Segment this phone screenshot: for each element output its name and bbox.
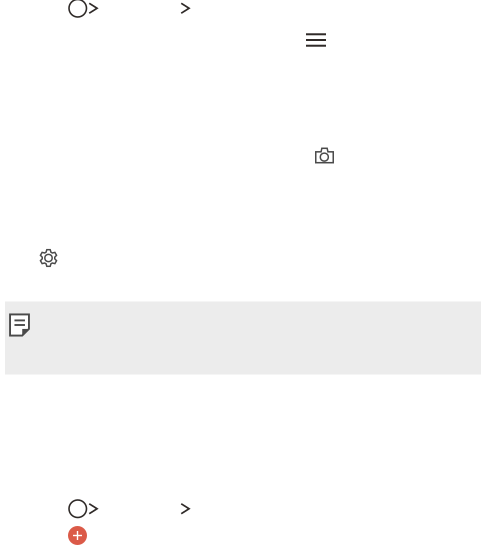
button[interactable]: More <box>180 3 189 14</box>
button[interactable]: New <box>68 526 87 545</box>
button[interactable]: Settings <box>40 249 57 266</box>
button[interactable]: Account <box>69 0 97 17</box>
button[interactable]: Note <box>5 301 481 374</box>
button[interactable]: Account <box>69 500 97 517</box>
button[interactable]: Menu <box>306 33 326 46</box>
button[interactable]: More <box>180 503 189 514</box>
button[interactable]: Camera <box>315 147 334 163</box>
